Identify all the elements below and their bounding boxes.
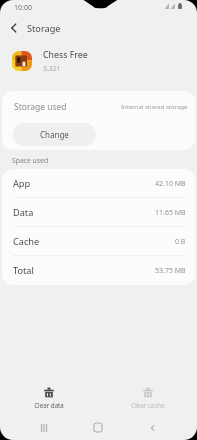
staticText: Total — [13, 264, 34, 277]
button[interactable]: Home — [76, 417, 120, 438]
staticText: Storage — [27, 22, 61, 35]
staticText: Change — [40, 129, 69, 140]
staticText: Clear cache — [131, 401, 165, 409]
staticText: 10:00 — [14, 3, 32, 13]
button[interactable]: Cache — [2, 227, 195, 256]
staticText: 0 B — [175, 237, 186, 247]
button[interactable]: Change — [13, 123, 96, 146]
button[interactable]: Clear cache — [98, 384, 197, 412]
staticText: Cache — [13, 235, 40, 248]
staticText: Chess Free — [43, 49, 88, 61]
staticText: 42.10 MB — [155, 179, 186, 189]
button[interactable]: Back — [131, 417, 175, 438]
staticText: 3.321 — [43, 64, 61, 73]
staticText: 53.75 MB — [155, 266, 186, 276]
button[interactable]: Clear data — [0, 384, 98, 412]
button[interactable]: App — [2, 169, 195, 198]
button[interactable]: Data — [2, 198, 195, 227]
staticText: Space used — [12, 156, 49, 165]
button[interactable]: Back — [0, 16, 27, 40]
staticText: Storage used — [14, 101, 67, 113]
staticText: Internal shared storage — [121, 103, 188, 111]
button[interactable]: Total — [2, 256, 195, 285]
button[interactable]: Recents — [22, 417, 66, 438]
staticText: 11.65 MB — [155, 208, 186, 218]
staticText: App — [13, 177, 31, 190]
staticText: Clear data — [34, 401, 64, 409]
staticText: Data — [13, 206, 34, 219]
